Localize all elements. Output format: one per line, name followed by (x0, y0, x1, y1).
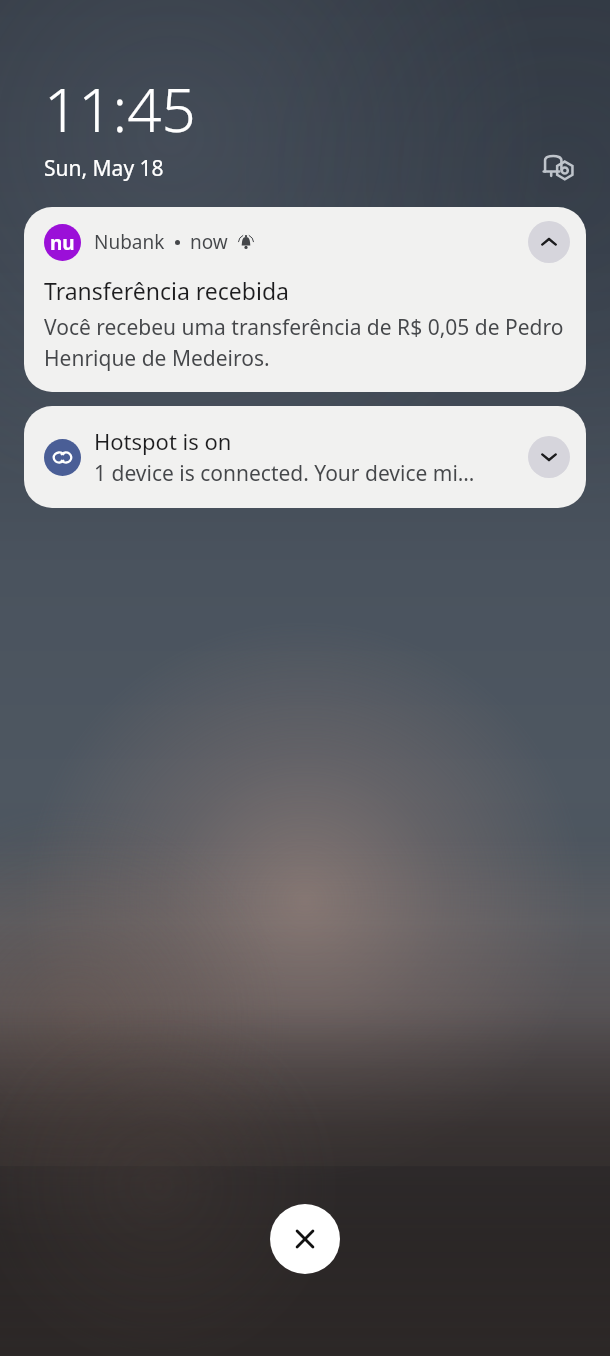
staticText: Sun, May 18 (44, 154, 164, 183)
button[interactable]: nu (24, 207, 586, 392)
staticText: Transferência recebida (44, 275, 289, 306)
staticText: Você recebeu uma transferência de R$ 0,0… (44, 313, 570, 372)
button[interactable]: Notification settings (536, 144, 580, 188)
button[interactable]: Collapse notification (528, 221, 570, 263)
staticText: 1 device is connected. Your device mi… (94, 459, 475, 488)
staticText: Hotspot is on (94, 426, 232, 456)
button[interactable]: Close (270, 1204, 340, 1274)
button[interactable]: Hotspot is on (24, 406, 586, 508)
button[interactable]: Expand notification (528, 436, 570, 478)
staticText: now (190, 229, 228, 255)
staticText: 11:45 (44, 68, 196, 150)
staticText: Nubank (94, 229, 165, 255)
staticText: nu (50, 230, 75, 256)
